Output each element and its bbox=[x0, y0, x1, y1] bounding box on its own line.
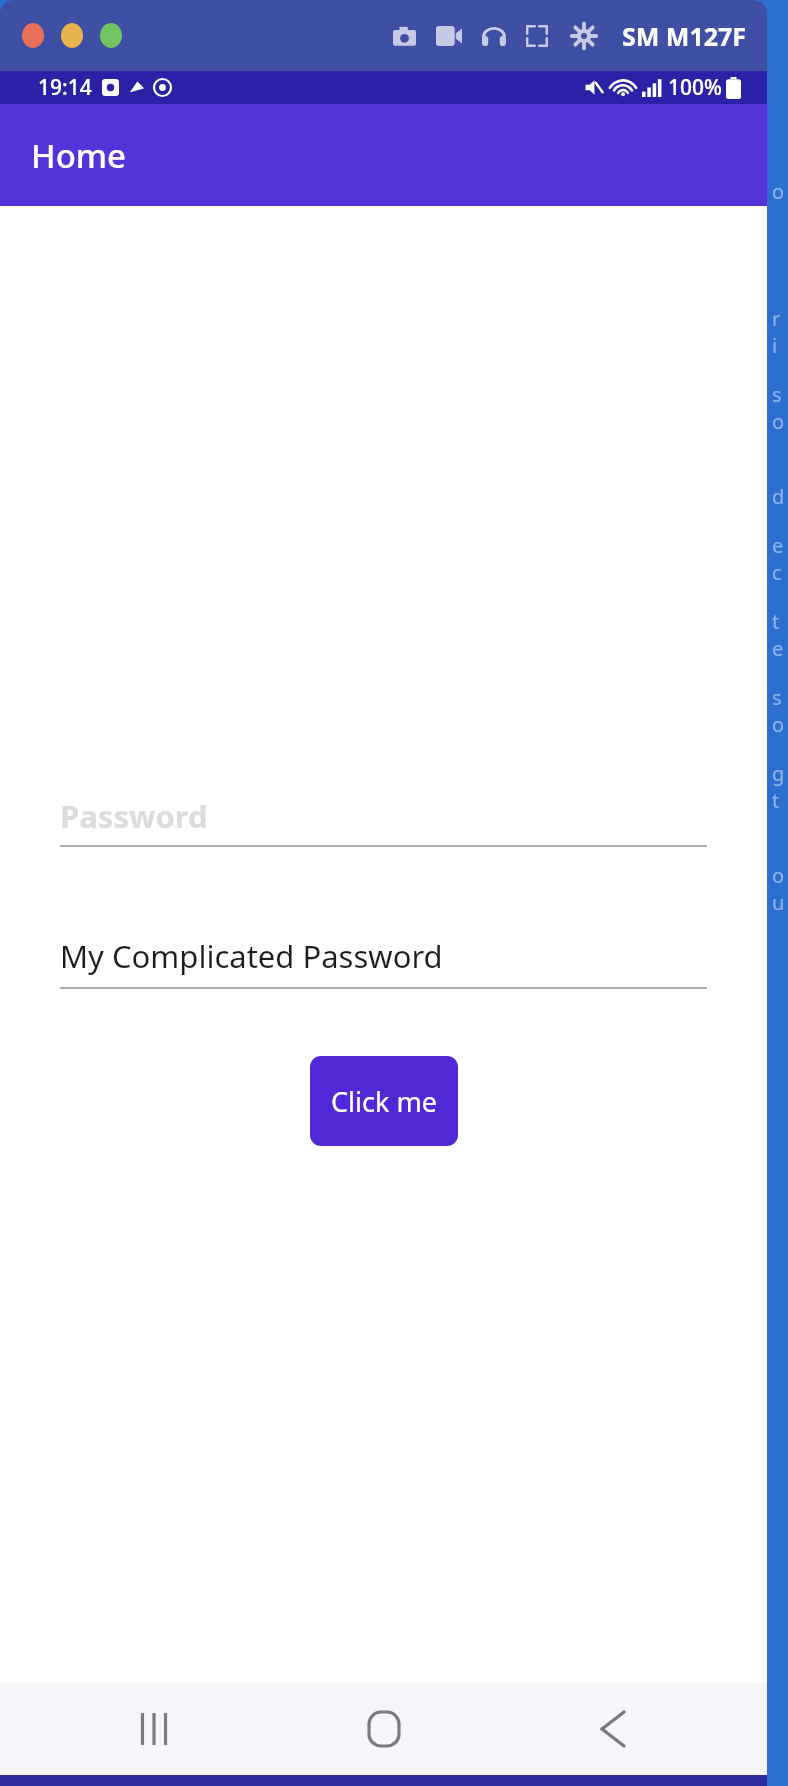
staticText: s o bbox=[772, 381, 788, 435]
staticText: g t bbox=[772, 760, 788, 814]
staticText: Password bbox=[60, 795, 208, 837]
staticText: SM M127F bbox=[622, 19, 747, 53]
staticText: r i bbox=[772, 305, 788, 359]
staticText: ec bbox=[772, 532, 788, 586]
button[interactable]: Fullscreen bbox=[526, 25, 548, 47]
button[interactable]: Audio bbox=[482, 24, 506, 48]
button[interactable]: Click me bbox=[310, 1056, 458, 1146]
staticText: ou bbox=[772, 862, 788, 916]
button[interactable]: Screenshot bbox=[393, 25, 416, 48]
staticText: d bbox=[772, 483, 785, 510]
button[interactable]: Recents bbox=[79, 1683, 229, 1775]
staticText: o bbox=[772, 178, 785, 205]
staticText: 19:14 bbox=[38, 73, 92, 102]
button[interactable]: Settings bbox=[572, 24, 596, 48]
staticText: so bbox=[772, 684, 788, 738]
button[interactable]: Home bbox=[309, 1683, 459, 1775]
staticText: Click me bbox=[331, 1083, 437, 1120]
staticText: 100% bbox=[668, 73, 722, 102]
staticText: My Complicated Password bbox=[60, 935, 443, 977]
staticText: te bbox=[772, 608, 788, 662]
staticText: Home bbox=[31, 133, 127, 178]
button[interactable]: Back bbox=[538, 1683, 688, 1775]
button[interactable]: Password bbox=[60, 795, 707, 847]
button[interactable]: Record bbox=[436, 26, 462, 46]
button[interactable]: My Complicated Password bbox=[60, 935, 707, 989]
